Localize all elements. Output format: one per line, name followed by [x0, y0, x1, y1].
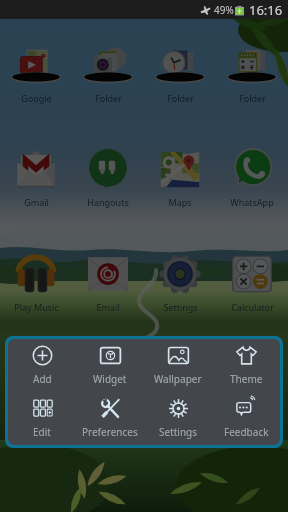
button[interactable]: Email [72, 255, 144, 313]
button[interactable]: WhatsApp [216, 150, 288, 208]
staticText: Calculator [231, 301, 274, 313]
staticText: Edit [33, 425, 51, 439]
button[interactable]: Preferences [76, 392, 144, 445]
button[interactable]: Maps [144, 150, 216, 208]
button[interactable]: Play Music [0, 255, 72, 313]
staticText: Maps [168, 196, 192, 208]
staticText: Hangouts [87, 196, 129, 208]
button[interactable]: Hangouts [72, 150, 144, 208]
staticText: 16:16 [249, 1, 283, 19]
button[interactable]: Gmail [0, 150, 72, 208]
button[interactable]: Google [0, 42, 72, 104]
staticText: Wallpaper [154, 372, 202, 386]
staticText: Add [33, 372, 52, 386]
button[interactable]: Add [8, 339, 76, 392]
staticText: Play Music [14, 301, 59, 313]
staticText: Gmail [24, 196, 49, 208]
staticText: Folder [95, 92, 122, 104]
button[interactable]: Folder [216, 42, 288, 104]
button[interactable]: Settings [144, 392, 212, 445]
button[interactable]: Wallpaper [144, 339, 212, 392]
staticText: Google [21, 92, 52, 104]
staticText: Settings [159, 425, 198, 439]
staticText: 49% [214, 3, 234, 17]
staticText: Email [96, 301, 120, 313]
button[interactable]: Folder [144, 42, 216, 104]
staticText: Folder [167, 92, 194, 104]
button[interactable]: Widget [76, 339, 144, 392]
staticText: WhatsApp [230, 196, 274, 208]
button[interactable]: Feedback [212, 392, 280, 445]
staticText: Feedback [224, 425, 269, 439]
staticText: Preferences [82, 425, 138, 439]
button[interactable]: Settings [144, 255, 216, 313]
staticText: Theme [230, 372, 263, 386]
button[interactable]: Calculator [216, 255, 288, 313]
staticText: Settings [163, 301, 198, 313]
staticText: Widget [93, 372, 127, 386]
button[interactable]: Theme [212, 339, 280, 392]
button[interactable]: Folder [72, 42, 144, 104]
button[interactable]: Edit [8, 392, 76, 445]
staticText: Folder [239, 92, 266, 104]
